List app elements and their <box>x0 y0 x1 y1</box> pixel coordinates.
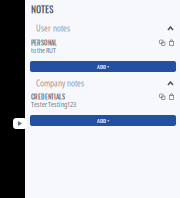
button[interactable]: Copy <box>159 40 165 45</box>
button[interactable]: ADD + <box>30 115 176 126</box>
staticText: ADD + <box>97 62 109 70</box>
button[interactable]: User notes <box>25 25 180 32</box>
button[interactable]: ADD + <box>30 61 176 72</box>
staticText: CREDENTIALS <box>31 92 65 101</box>
button[interactable]: Expand sidebar <box>13 118 27 129</box>
button[interactable]: Delete <box>169 40 174 45</box>
staticText: Company notes <box>36 78 84 89</box>
staticText: ADD + <box>97 116 109 124</box>
staticText: NOTES <box>31 2 54 16</box>
button[interactable]: Company notes <box>25 80 180 87</box>
staticText: User notes <box>36 23 70 34</box>
staticText: Tester Testing123 <box>31 100 76 109</box>
staticText: to the RUT <box>31 46 56 55</box>
button[interactable]: Copy <box>159 94 165 99</box>
button[interactable]: Delete <box>169 94 174 99</box>
staticText: PERSONAL <box>31 38 57 47</box>
